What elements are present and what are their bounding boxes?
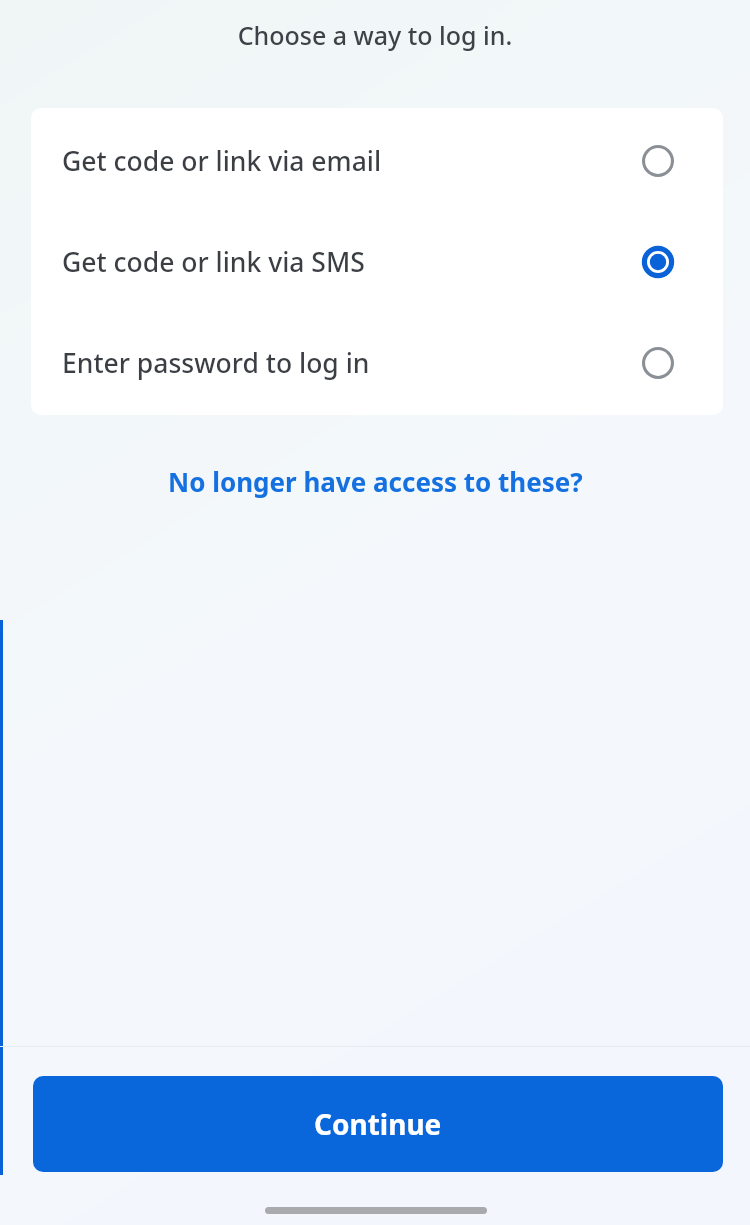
staticText: Continue — [314, 1105, 442, 1143]
staticText: Get code or link via SMS — [62, 244, 640, 280]
button[interactable]: No longer have access to these? — [154, 456, 597, 507]
button[interactable]: Get code or link via email — [31, 110, 723, 211]
staticText: Get code or link via email — [62, 143, 640, 179]
staticText: No longer have access to these? — [168, 464, 583, 499]
button[interactable]: Enter password to log in — [31, 312, 723, 413]
button[interactable]: Get code or link via SMS — [31, 211, 723, 312]
staticText: Enter password to log in — [62, 345, 640, 381]
button[interactable]: Continue — [33, 1076, 723, 1172]
staticText: Choose a way to log in. — [0, 18, 750, 52]
